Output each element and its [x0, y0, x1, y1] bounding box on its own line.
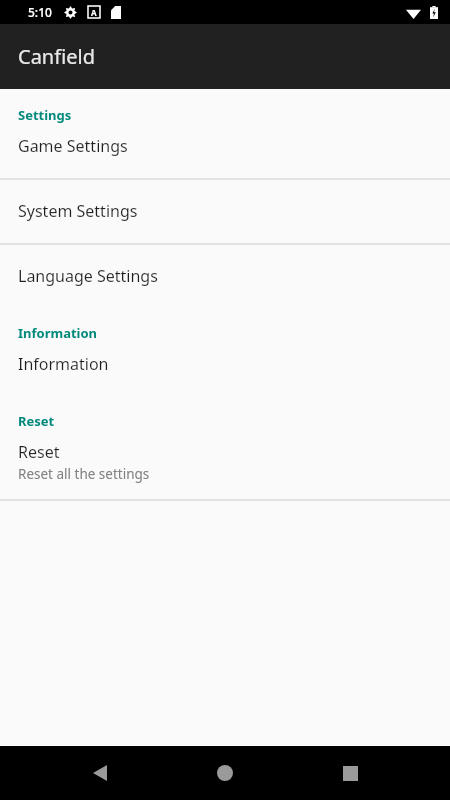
button[interactable]: Information — [0, 342, 450, 396]
staticText: Information — [18, 353, 109, 375]
staticText: A — [91, 7, 97, 18]
staticText: Information — [18, 324, 450, 342]
staticText: System Settings — [18, 200, 138, 222]
staticText: Reset — [18, 441, 60, 463]
button[interactable]: Recents — [328, 751, 372, 795]
staticText: Reset all the settings — [18, 465, 150, 483]
button[interactable]: Language Settings — [0, 245, 450, 308]
button[interactable]: Back — [78, 751, 122, 795]
staticText: Canfield — [18, 43, 95, 70]
staticText: Language Settings — [18, 265, 158, 287]
staticText: Reset — [18, 412, 450, 430]
staticText: Settings — [18, 106, 450, 124]
button[interactable]: Reset — [0, 430, 450, 499]
button[interactable]: Home — [203, 751, 247, 795]
button[interactable]: Game Settings — [0, 124, 450, 178]
staticText: Game Settings — [18, 135, 128, 157]
staticText: 5:10 — [28, 4, 52, 20]
button[interactable]: System Settings — [0, 180, 450, 243]
